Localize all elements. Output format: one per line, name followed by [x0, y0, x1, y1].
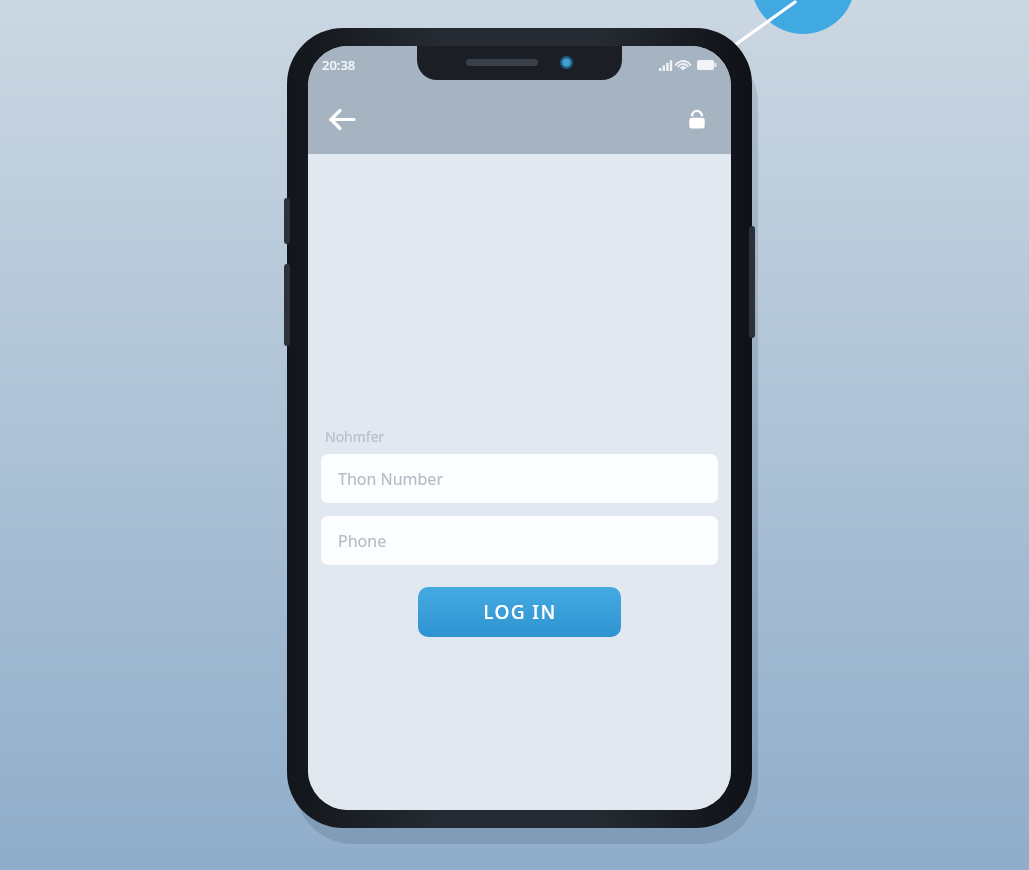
staticText: Nohmfer [325, 427, 385, 446]
button[interactable]: LOG IN [418, 587, 621, 637]
button[interactable]: Thon Number [321, 454, 718, 503]
button[interactable]: Unlock [675, 97, 719, 141]
button[interactable]: Back [320, 97, 364, 141]
staticText: Thon Number [338, 468, 443, 490]
staticText: LOG IN [483, 599, 557, 625]
staticText: 20:38 [322, 56, 356, 74]
staticText: Phone [338, 530, 387, 552]
button[interactable]: Phone [321, 516, 718, 565]
